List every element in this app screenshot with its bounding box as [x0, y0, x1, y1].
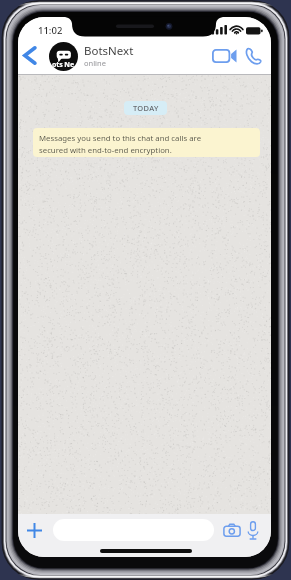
- button[interactable]: Attach: [23, 519, 46, 542]
- button[interactable]: Voice message: [241, 518, 265, 542]
- staticText: ots Ne: [52, 60, 75, 70]
- button[interactable]: TODAY: [124, 101, 167, 115]
- button[interactable]: Video call: [209, 43, 240, 69]
- staticText: online: [84, 58, 106, 68]
- button[interactable]: Camera: [219, 520, 244, 541]
- button[interactable]: Back: [18, 41, 40, 70]
- staticText: BotsNext: [84, 43, 134, 59]
- button[interactable]: Messages you send to this chat and calls…: [33, 128, 260, 157]
- button[interactable]: Voice call: [238, 43, 268, 69]
- staticText: Messages you send to this chat and calls…: [39, 133, 202, 155]
- staticText: 11:02: [38, 24, 63, 37]
- staticText: TODAY: [133, 103, 159, 113]
- button[interactable]: ots Ne: [49, 41, 189, 71]
